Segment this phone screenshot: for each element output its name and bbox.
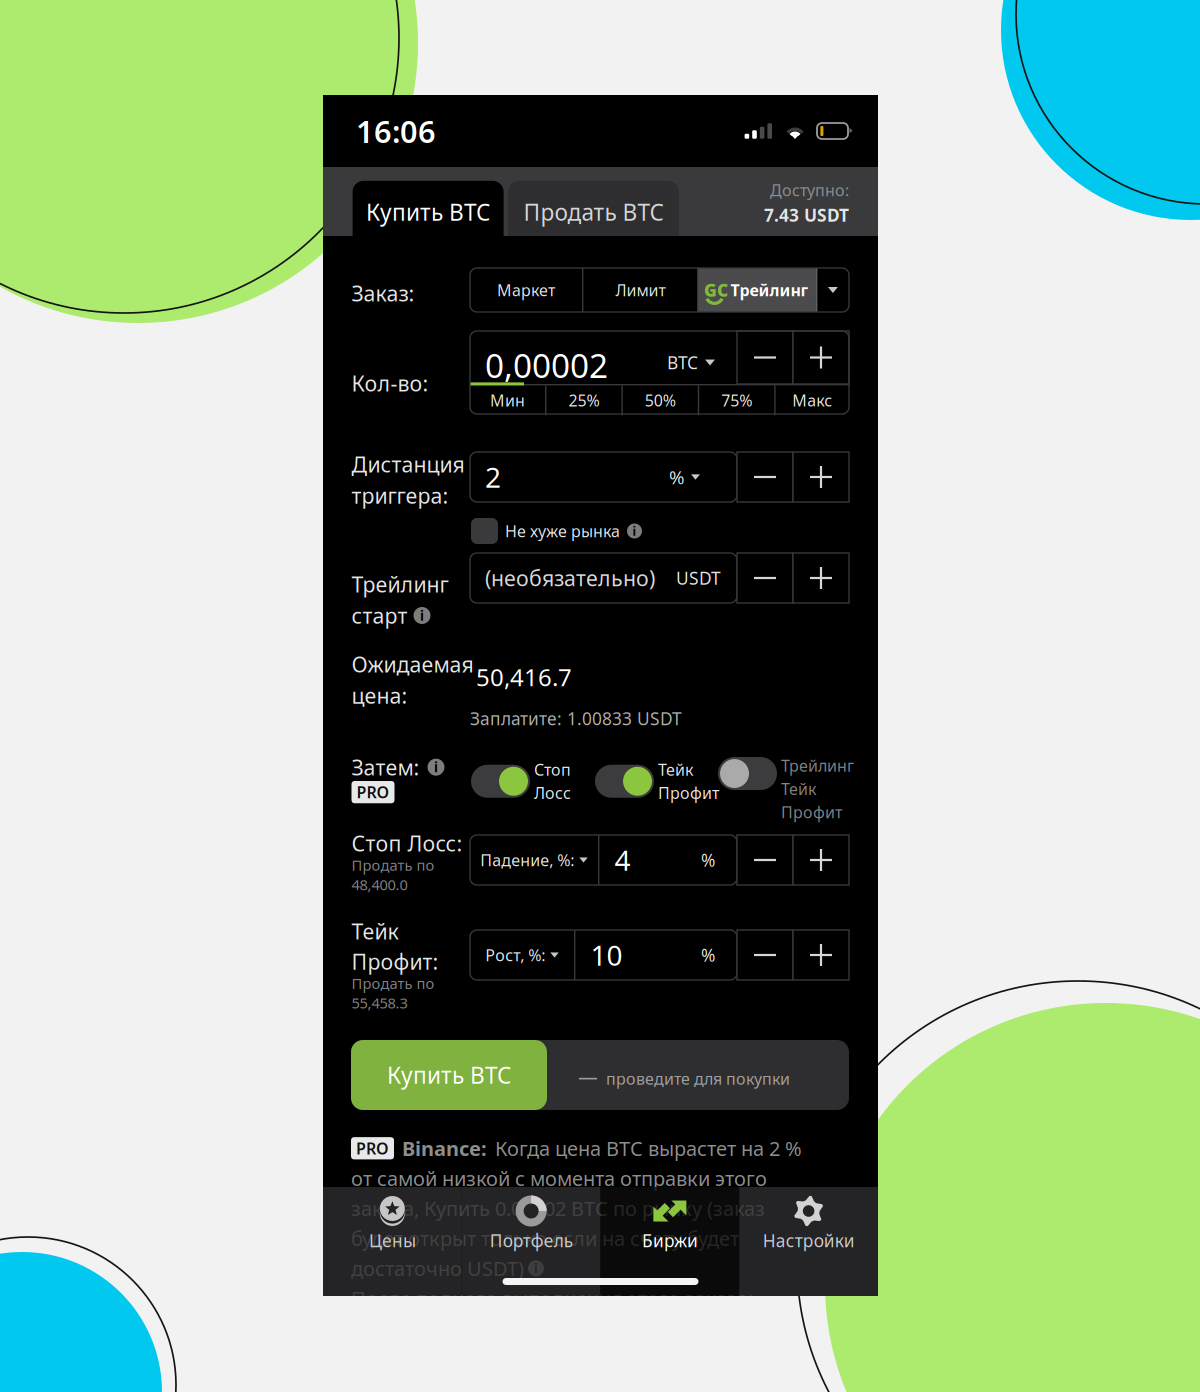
button[interactable]: Decrease [737,930,793,980]
staticText: Макс [792,390,832,411]
button[interactable]: Increase [793,835,849,885]
button[interactable]: Падение, %: [470,835,598,885]
button[interactable]: Тейк [595,759,719,803]
staticText: Кол-во: [351,369,428,397]
staticText: Стоп [534,759,571,780]
staticText: Стоп Лосс: [351,829,462,857]
staticText: Биржи [642,1229,698,1252]
staticText: цена: [351,681,407,710]
staticText: Профит [781,801,842,823]
staticText: 50,416.7 [476,661,572,693]
button[interactable]: Decrease [737,835,793,885]
staticText: Доступно: [770,179,849,201]
staticText: Купить BTC [366,197,490,227]
staticText: Тейк [658,759,693,780]
staticText: GC [704,278,728,301]
staticText: 75% [721,390,752,411]
staticText: Binance: [402,1135,487,1162]
staticText: После полного выполнения этого заказа: [351,1285,753,1312]
button[interactable]: Рост, %: [470,930,574,980]
staticText: заказа, Купить 0.00002 BTC по рынку (зак… [351,1195,765,1222]
staticText: BTC [667,351,698,374]
button[interactable]: Портфель [462,1187,601,1296]
button[interactable]: Биржи [600,1187,739,1296]
staticText: USDT [676,566,721,589]
button[interactable]: Increase [793,452,849,502]
staticText: Настройки [763,1229,855,1252]
staticText: % [701,848,715,871]
staticText: 16:06 [356,111,436,151]
staticText: Портфель [490,1229,573,1252]
button[interactable]: Маркет [470,268,582,312]
button[interactable]: Decrease [737,331,793,384]
button[interactable]: Decrease [737,452,793,502]
button[interactable]: Купить BTC [351,1040,547,1110]
staticText: i [632,523,636,539]
button[interactable]: Трейлинг [718,755,854,823]
staticText: 55,458.3 [351,993,407,1013]
staticText: Профит: [351,947,438,976]
staticText: Трейлинг [730,279,808,301]
staticText: Не хуже рынка [505,520,620,542]
staticText: Лосс [534,782,571,803]
staticText: старт [351,601,407,630]
staticText: Заплатите: 1.00833 USDT [470,707,682,730]
staticText: 50% [645,390,676,411]
staticText: Тейк [781,778,816,799]
staticText: 48,400.0 [351,875,407,894]
button[interactable]: Стоп [471,759,571,803]
staticText: проведите для покупки [606,1068,790,1089]
staticText: PRO [356,781,389,803]
staticText: 4 [614,841,630,879]
staticText: 25% [568,390,599,411]
button[interactable]: More order types [817,268,848,312]
staticText: Падение, %: [480,849,574,871]
staticText: % [669,465,685,489]
button[interactable]: 50% [623,385,698,415]
staticText: i [534,1260,538,1276]
staticText: будет открыт только если на счету будет [351,1225,739,1252]
staticText: 7.43 USDT [764,204,849,227]
staticText: Продать по [351,855,434,875]
staticText: Заказ: [351,279,414,307]
button[interactable]: GC [698,268,816,312]
staticText: Затем: [351,753,419,781]
staticText: достаточно USDT) [351,1255,524,1282]
staticText: Цены [369,1229,416,1252]
staticText: триггера: [351,481,448,510]
staticText: Тейк [351,917,398,945]
staticText: 0,00002 [485,343,608,387]
staticText: i [420,607,424,624]
staticText: Трейлинг [351,570,448,598]
button[interactable]: Цены [323,1187,462,1296]
staticText: Купить BTC [387,1060,511,1090]
button[interactable]: Продать BTC [508,181,679,237]
button[interactable]: Настройки [739,1187,878,1296]
staticText: % [701,943,715,966]
staticText: Продать BTC [523,197,663,227]
button[interactable]: Increase [793,331,849,384]
staticText: от самой низкой с момента отправки этого [351,1165,767,1192]
staticText: Трейлинг [781,755,854,776]
staticText: Маркет [497,279,555,301]
staticText: Ожидаемая [351,650,473,678]
button[interactable]: Купить BTC [353,181,504,237]
button[interactable]: Не хуже рынка [471,518,498,544]
staticText: 2 [485,458,501,496]
button[interactable]: 25% [546,385,621,415]
staticText: Лимит [615,279,665,301]
button[interactable]: Лимит [583,268,697,312]
staticText: i [434,758,438,776]
button[interactable]: Мин [470,385,545,415]
button[interactable]: Макс [776,385,849,415]
staticText: (необязательно) [485,564,655,592]
staticText: Дистанция [351,450,464,478]
button[interactable]: Increase [793,553,849,603]
staticText: Когда цена BTC вырастет на 2 % [495,1135,802,1162]
button[interactable]: 75% [699,385,774,415]
staticText: 10 [590,936,622,974]
button[interactable]: Decrease [737,553,793,603]
staticText: Профит [658,782,719,803]
staticText: Мин [490,390,525,411]
button[interactable]: Increase [793,930,849,980]
